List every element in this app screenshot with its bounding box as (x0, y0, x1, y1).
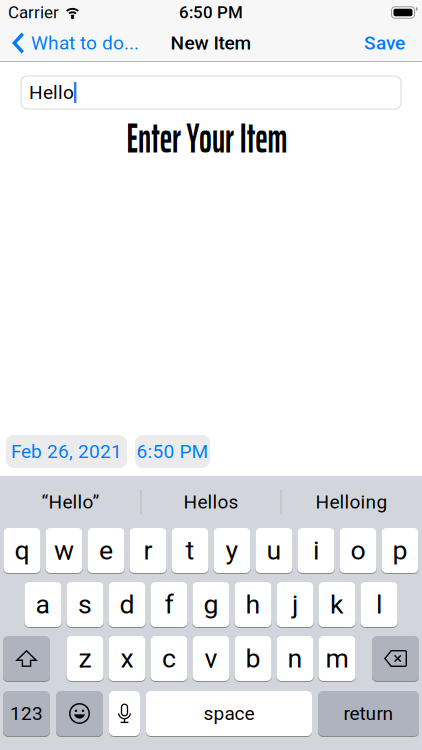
staticText: h (245, 589, 260, 620)
staticText: 6:50 PM (136, 440, 208, 463)
button[interactable] (56, 691, 103, 736)
button[interactable]: What to do... (0, 32, 139, 54)
staticText: l (376, 589, 382, 620)
staticText: return (343, 702, 393, 725)
button[interactable]: Save (364, 32, 422, 54)
staticText: s (78, 589, 92, 620)
button[interactable] (372, 636, 419, 681)
button[interactable]: t (171, 528, 208, 573)
button[interactable]: v (192, 636, 229, 681)
button[interactable]: a (24, 582, 61, 627)
button[interactable]: o (339, 528, 376, 573)
staticText: t (185, 535, 194, 566)
staticText: What to do... (31, 32, 139, 54)
button[interactable]: d (108, 582, 145, 627)
button[interactable]: u (255, 528, 292, 573)
button[interactable]: Hellos (141, 476, 280, 528)
staticText: e (99, 535, 113, 566)
staticText: New Item (170, 32, 251, 54)
staticText: Save (364, 32, 405, 54)
button[interactable]: y (213, 528, 250, 573)
staticText: space (203, 702, 254, 725)
button[interactable]: g (192, 582, 229, 627)
staticText: n (287, 643, 302, 674)
staticText: a (35, 589, 50, 620)
button[interactable]: b (234, 636, 271, 681)
button[interactable]: Helloing (281, 476, 421, 528)
button[interactable]: k (318, 582, 355, 627)
button[interactable]: l (360, 582, 397, 627)
button[interactable]: f (150, 582, 187, 627)
button[interactable]: “Hello” (0, 476, 140, 528)
staticText: g (203, 589, 218, 620)
button[interactable]: i (297, 528, 334, 573)
staticText: q (14, 535, 29, 566)
button[interactable]: return (318, 691, 419, 736)
button[interactable]: w (45, 528, 82, 573)
staticText: m (325, 643, 348, 674)
staticText: y (225, 535, 238, 566)
button[interactable]: Feb 26, 2021 (6, 435, 127, 468)
staticText: k (330, 589, 344, 620)
staticText: x (120, 643, 133, 674)
button[interactable]: 6:50 PM (135, 435, 210, 468)
button[interactable]: q (3, 528, 40, 573)
staticText: u (266, 535, 281, 566)
staticText: f (164, 589, 173, 620)
staticText: d (119, 589, 134, 620)
staticText: i (313, 535, 319, 566)
button[interactable]: 123 (3, 691, 50, 736)
staticText: c (162, 643, 176, 674)
button[interactable]: m (318, 636, 355, 681)
staticText: Hello (29, 81, 74, 104)
staticText: 6:50 PM (179, 3, 243, 22)
button[interactable]: c (150, 636, 187, 681)
staticText: Enter Your Item (102, 104, 311, 171)
button[interactable]: x (108, 636, 145, 681)
staticText: Feb 26, 2021 (11, 440, 122, 463)
button[interactable]: j (276, 582, 313, 627)
staticText: “Hello” (41, 491, 99, 513)
button[interactable]: space (146, 691, 312, 736)
staticText: r (143, 535, 152, 566)
button[interactable]: h (234, 582, 271, 627)
staticText: Carrier (8, 3, 59, 22)
button[interactable]: r (129, 528, 166, 573)
staticText: Hellos (183, 491, 238, 513)
button[interactable]: e (87, 528, 124, 573)
staticText: z (78, 643, 91, 674)
staticText: 123 (10, 702, 43, 725)
staticText: b (245, 643, 260, 674)
staticText: w (54, 535, 74, 566)
staticText: p (392, 535, 407, 566)
staticText: v (204, 643, 217, 674)
staticText: j (292, 589, 298, 620)
button[interactable]: s (66, 582, 103, 627)
staticText: o (350, 535, 365, 566)
button[interactable]: n (276, 636, 313, 681)
button[interactable]: p (381, 528, 418, 573)
button[interactable]: z (66, 636, 103, 681)
button[interactable] (109, 691, 140, 736)
staticText: Helloing (315, 491, 387, 513)
button[interactable] (3, 636, 50, 681)
